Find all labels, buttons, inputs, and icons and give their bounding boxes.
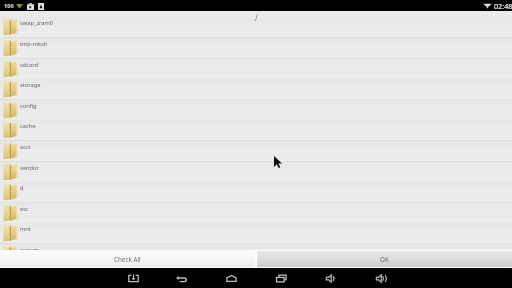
staticText: storage: [20, 81, 41, 89]
staticText: swap_zram0: [20, 19, 54, 27]
button[interactable]: sdcard: [0, 59, 512, 80]
staticText: OK: [380, 255, 389, 264]
button[interactable]: mnt: [0, 223, 512, 244]
button[interactable]: cache: [0, 120, 512, 141]
button[interactable]: Volume down: [321, 268, 341, 288]
staticText: tmp-mksh: [20, 40, 48, 48]
button[interactable]: Screenshot: [123, 268, 143, 288]
button[interactable]: tmp-mksh: [0, 38, 512, 59]
button[interactable]: storage: [0, 79, 512, 100]
button[interactable]: etc: [0, 203, 512, 224]
button[interactable]: config: [0, 100, 512, 121]
button[interactable]: OK: [257, 251, 512, 267]
button[interactable]: Home: [221, 268, 241, 288]
button[interactable]: Back: [171, 268, 191, 288]
staticText: 100: [4, 2, 14, 10]
button[interactable]: Volume up: [371, 268, 391, 288]
button[interactable]: acct: [0, 141, 512, 162]
staticText: vendor: [20, 164, 39, 172]
staticText: etc: [20, 205, 28, 213]
button[interactable]: d: [0, 182, 512, 203]
staticText: cache: [20, 122, 36, 130]
staticText: /: [255, 12, 258, 23]
button[interactable]: Check All: [0, 251, 255, 267]
button[interactable]: Recents: [271, 268, 291, 288]
staticText: d: [20, 184, 24, 192]
staticText: Check All: [114, 255, 141, 264]
staticText: 02:48: [494, 1, 512, 11]
button[interactable]: system: [0, 244, 512, 265]
staticText: system: [20, 246, 39, 254]
staticText: mnt: [20, 225, 31, 233]
button[interactable]: vendor: [0, 162, 512, 183]
staticText: config: [20, 102, 37, 110]
staticText: sdcard: [20, 61, 38, 69]
staticText: acct: [20, 143, 31, 151]
button[interactable]: swap_zram0: [0, 17, 512, 38]
